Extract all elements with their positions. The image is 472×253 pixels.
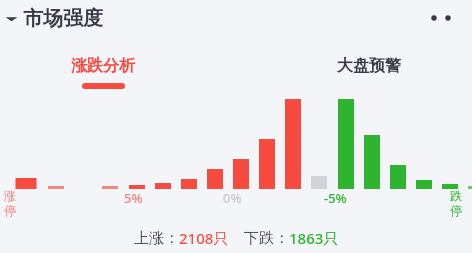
staticText: 5% <box>124 189 143 207</box>
staticText: -5% <box>324 189 347 207</box>
staticText: 涨跌分析 <box>71 56 135 76</box>
staticText: 停 <box>4 203 16 218</box>
staticText: 涨 <box>4 188 16 203</box>
staticText: 0% <box>223 189 242 207</box>
staticText: 大盘预警 <box>337 56 401 76</box>
button[interactable]: 大盘预警 <box>337 56 401 76</box>
button[interactable]: 市场强度 <box>0 0 472 36</box>
staticText: 2108只 <box>179 228 229 248</box>
staticText: 下跌： <box>244 229 289 248</box>
button[interactable]: 涨跌分析 <box>71 56 135 89</box>
staticText: 市场强度 <box>23 6 103 31</box>
staticText: 1863只 <box>289 228 339 248</box>
button[interactable]: More options <box>424 6 460 30</box>
staticText: 停 <box>450 203 462 218</box>
staticText: 上涨： <box>134 229 179 248</box>
staticText: 跌 <box>450 188 462 203</box>
